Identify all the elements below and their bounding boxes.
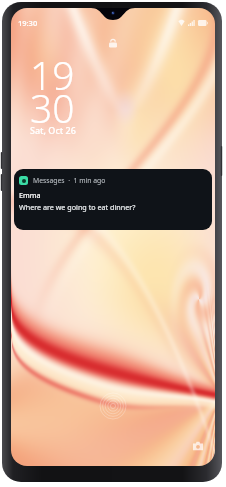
staticText: 19:30 — [18, 18, 38, 28]
staticText: 30 — [30, 81, 75, 134]
button[interactable]: Messages · 1 min ago — [14, 169, 212, 230]
button[interactable]: Camera — [192, 440, 204, 452]
other: Locked — [107, 37, 119, 49]
staticText: Sat, Oct 26 — [30, 124, 76, 136]
other: Fingerprint unlock — [100, 393, 126, 419]
staticText: Messages · 1 min ago — [33, 176, 106, 185]
staticText: Emma — [19, 190, 41, 200]
staticText: Where are we going to eat dinner? — [19, 202, 136, 212]
staticText: 19 — [30, 48, 75, 101]
